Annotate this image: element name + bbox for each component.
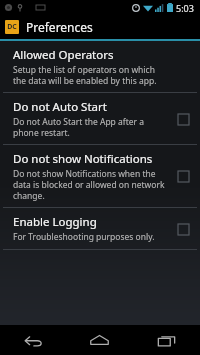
button[interactable]: Allowed Operators (0, 41, 200, 92)
staticText: Do not Auto Start (13, 99, 107, 115)
button[interactable]: Home (66, 325, 133, 355)
staticText: 5:03 (176, 2, 194, 14)
button[interactable]: Toggle Enable Logging (174, 220, 192, 238)
button[interactable]: Do not Auto Start (0, 93, 200, 144)
button[interactable]: Recent apps (133, 325, 200, 355)
staticText: For Troubleshooting purposes only. (13, 231, 155, 243)
button[interactable]: Back (0, 325, 66, 355)
staticText: DC (7, 22, 17, 32)
button[interactable]: Enable Logging (0, 208, 200, 249)
staticText: Setup the list of operators on which the… (13, 64, 168, 86)
button[interactable]: Do not show Notifications (0, 145, 200, 207)
staticText: Enable Logging (13, 214, 97, 230)
button[interactable]: Toggle Do not show Notifications (174, 167, 192, 185)
staticText: Do not Auto Start the App after a phone … (13, 116, 168, 138)
staticText: Allowed Operators (13, 47, 114, 63)
button[interactable]: Toggle Do not Auto Start (174, 110, 192, 128)
staticText: Do not show Notifications (13, 151, 153, 167)
staticText: Do not show Notifications when the data … (13, 168, 168, 201)
staticText: Preferences (26, 19, 93, 35)
